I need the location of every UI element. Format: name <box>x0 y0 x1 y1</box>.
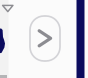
button[interactable]: Next <box>30 16 60 61</box>
button[interactable]: Filter <box>0 1 16 15</box>
